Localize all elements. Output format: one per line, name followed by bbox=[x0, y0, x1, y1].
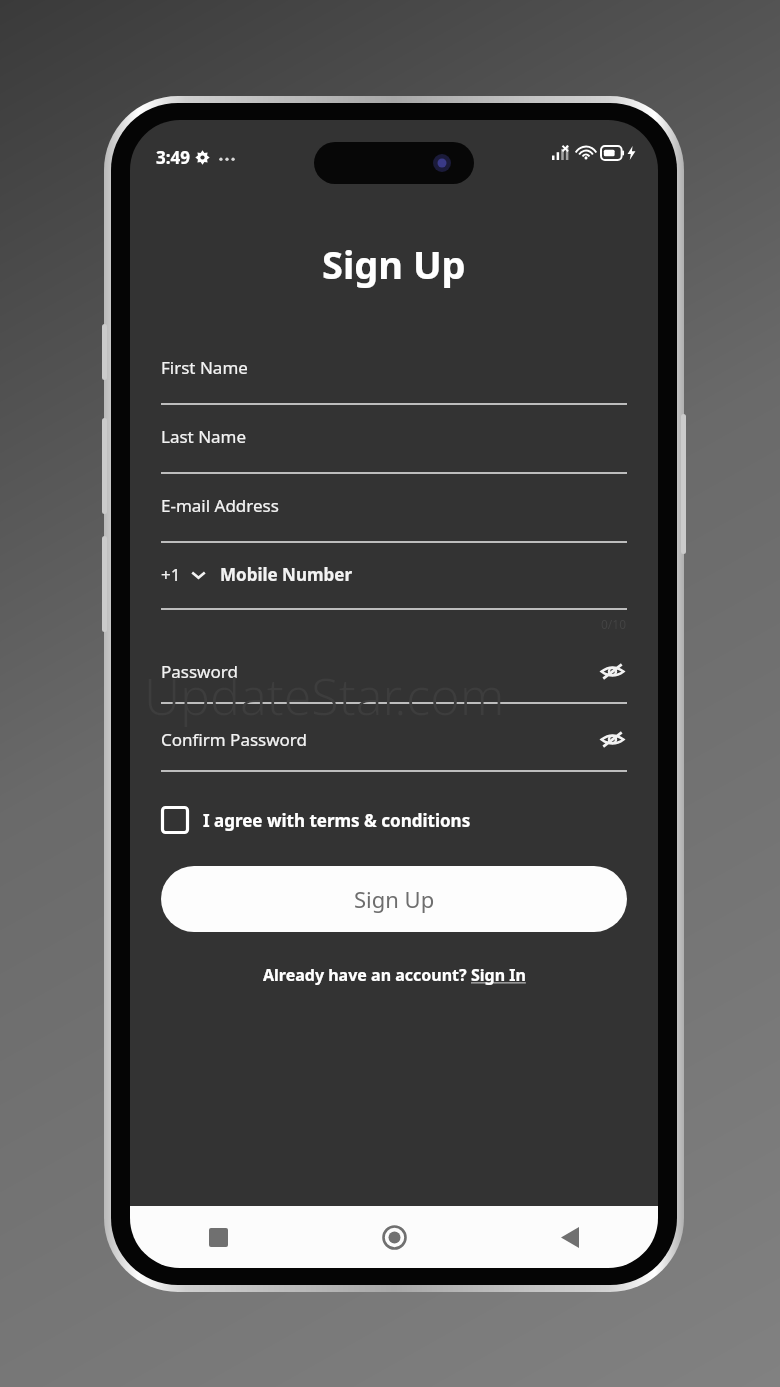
button[interactable]: Home bbox=[306, 1206, 482, 1268]
button[interactable]: Last Name bbox=[161, 405, 627, 474]
staticText: Sign Up bbox=[354, 884, 435, 914]
button[interactable]: Recent apps bbox=[130, 1206, 306, 1268]
button[interactable]: E-mail Address bbox=[161, 474, 627, 543]
staticText: First Name bbox=[161, 356, 248, 379]
button[interactable]: Show Confirm Password bbox=[597, 724, 627, 754]
staticText: Already have an account? bbox=[263, 964, 471, 986]
staticText: Sign In bbox=[471, 964, 526, 986]
staticText: I agree with terms & conditions bbox=[203, 809, 471, 832]
button[interactable]: Confirm Password bbox=[161, 724, 627, 754]
button[interactable]: Sign In bbox=[471, 964, 526, 986]
button[interactable]: Back bbox=[482, 1206, 658, 1268]
staticText: Password bbox=[161, 660, 238, 683]
staticText: 3:49 bbox=[156, 146, 190, 169]
staticText: Mobile Number bbox=[220, 563, 353, 586]
staticText: Sign Up bbox=[322, 238, 466, 290]
button[interactable]: First Name bbox=[161, 336, 627, 405]
other: Select country code bbox=[191, 570, 206, 580]
staticText: UpdateStar.com bbox=[144, 662, 505, 730]
button[interactable]: +1 bbox=[161, 543, 627, 610]
button[interactable]: Sign Up bbox=[161, 866, 627, 932]
staticText: Last Name bbox=[161, 425, 247, 448]
staticText: Confirm Password bbox=[161, 728, 307, 751]
staticText: E-mail Address bbox=[161, 494, 279, 517]
staticText: +1 bbox=[161, 563, 181, 586]
staticText: 0/10 bbox=[601, 616, 627, 632]
button[interactable]: Password bbox=[161, 656, 627, 686]
button[interactable]: I agree with terms & conditions bbox=[161, 806, 627, 834]
button[interactable]: Show Password bbox=[597, 656, 627, 686]
